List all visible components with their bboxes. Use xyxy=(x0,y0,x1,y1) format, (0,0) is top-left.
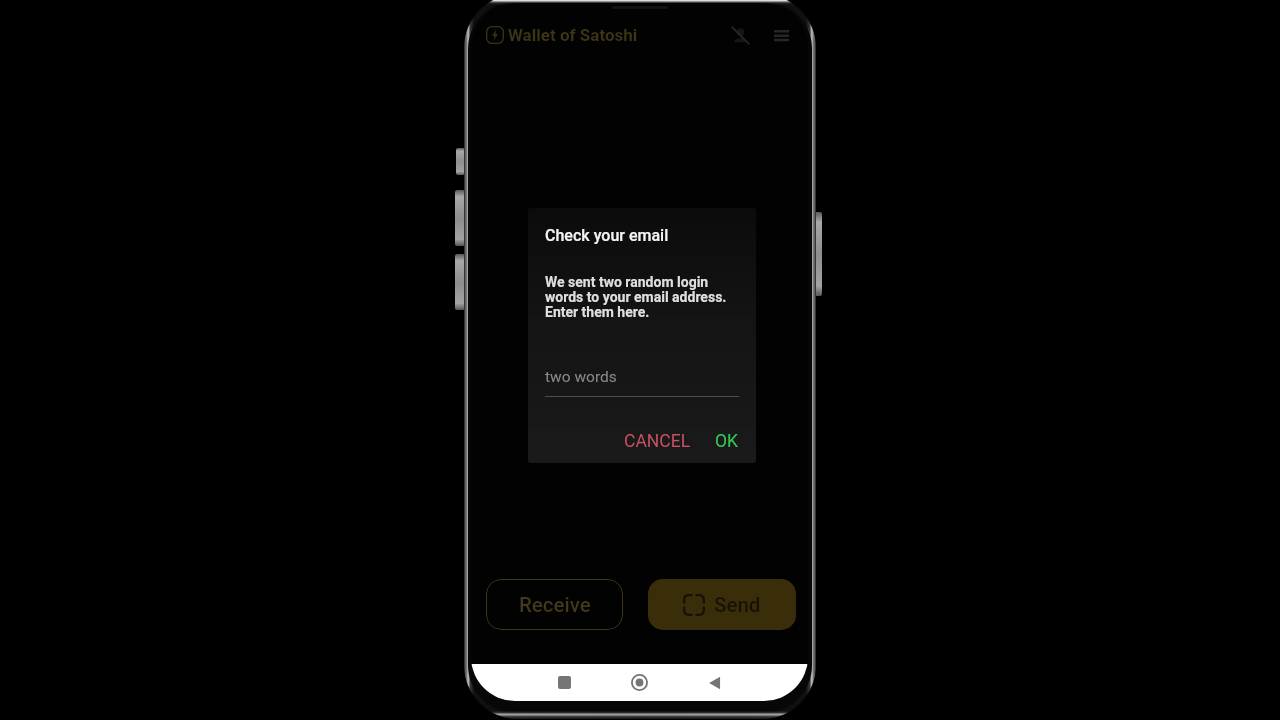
staticText: We sent two random login words to your e… xyxy=(545,274,730,321)
staticText: CANCEL xyxy=(624,431,691,452)
staticText: Check your email xyxy=(545,226,669,245)
button[interactable]: Back xyxy=(677,664,752,701)
button[interactable]: Receive xyxy=(486,579,623,630)
button[interactable]: Recents xyxy=(527,664,602,701)
staticText: Wallet of Satoshi xyxy=(508,25,638,45)
staticText: OK xyxy=(715,431,739,452)
button[interactable]: Home xyxy=(602,664,677,701)
staticText: Send xyxy=(714,593,761,617)
button[interactable]: Menu xyxy=(765,19,797,51)
button[interactable]: Send xyxy=(648,579,796,630)
button[interactable]: OK xyxy=(708,426,746,457)
staticText: Receive xyxy=(519,593,591,617)
button[interactable]: CANCEL xyxy=(617,426,698,457)
button[interactable]: Contacts off xyxy=(723,18,757,52)
staticText: two words xyxy=(545,368,617,386)
